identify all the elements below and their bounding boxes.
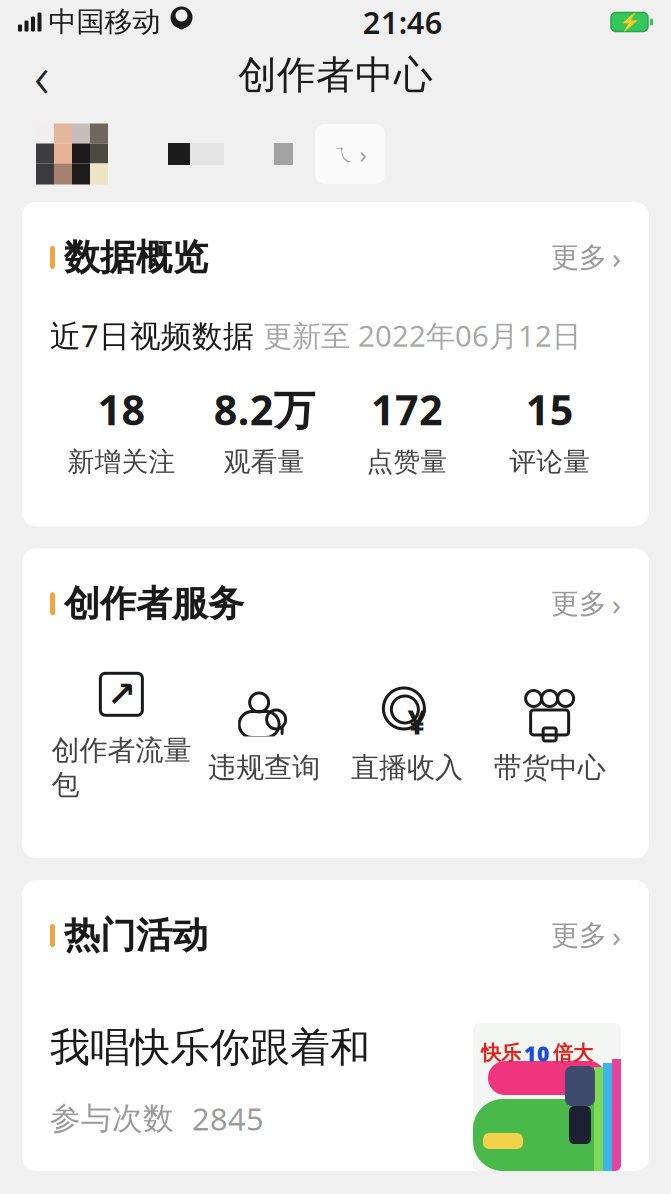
staticText: 创作者服务 [64, 582, 244, 626]
staticText: › [359, 138, 366, 170]
button[interactable]: 更多 [537, 578, 621, 629]
button[interactable]: 带货中心 [478, 682, 621, 789]
button[interactable]: Back [14, 47, 70, 103]
staticText: › [612, 584, 621, 623]
staticText: 评论量 [509, 446, 590, 478]
staticText: 近7日视频数据 [50, 315, 254, 356]
button[interactable]: ↗ [50, 665, 193, 806]
staticText: ⚡ [618, 12, 640, 32]
staticText: 创作者中心 [238, 51, 433, 99]
staticText: 创作者流量包 [51, 733, 191, 802]
staticText: 违规查询 [208, 750, 320, 785]
staticText: ↗ [107, 675, 136, 714]
staticText: 更多 [551, 240, 607, 275]
staticText: ㄟ [333, 141, 355, 167]
staticText: 10 [524, 1039, 550, 1067]
staticText: 热门活动 [64, 913, 208, 958]
staticText: ‹ [34, 36, 50, 114]
staticText: 参与次数 [50, 1100, 174, 1137]
staticText: 2845 [192, 1098, 264, 1139]
staticText: 15 [526, 382, 574, 437]
button[interactable]: 违规查询 [193, 682, 336, 789]
staticText: 我唱快乐你跟着和 [50, 1023, 370, 1072]
staticText: 点赞量 [366, 446, 447, 478]
staticText: ¥ [407, 699, 426, 744]
staticText: 更多 [551, 918, 607, 953]
staticText: 172 [371, 382, 443, 437]
staticText: 直播收入 [351, 750, 463, 785]
staticText: 中国移动 [48, 5, 160, 39]
staticText: › [612, 238, 621, 277]
staticText: 快乐 [481, 1041, 521, 1065]
staticText: 带货中心 [494, 750, 606, 785]
button[interactable]: 更多 [537, 910, 621, 961]
button[interactable]: Profile [0, 106, 671, 202]
staticText: 更多 [551, 587, 607, 621]
staticText: 21:46 [363, 2, 443, 42]
staticText: › [612, 916, 621, 955]
staticText: 数据概览 [64, 235, 208, 280]
button[interactable]: 更多 [537, 232, 621, 283]
staticText: 倍大 [553, 1041, 593, 1065]
button[interactable]: ¥ [335, 682, 478, 789]
staticText: 观看量 [224, 446, 305, 478]
button[interactable]: 我唱快乐你跟着和 [50, 961, 621, 1171]
staticText: 18 [97, 382, 145, 437]
staticText: 新增关注 [67, 446, 175, 478]
staticText: 8.2万 [214, 382, 315, 437]
staticText: 更新至 2022年06月12日 [263, 316, 581, 355]
